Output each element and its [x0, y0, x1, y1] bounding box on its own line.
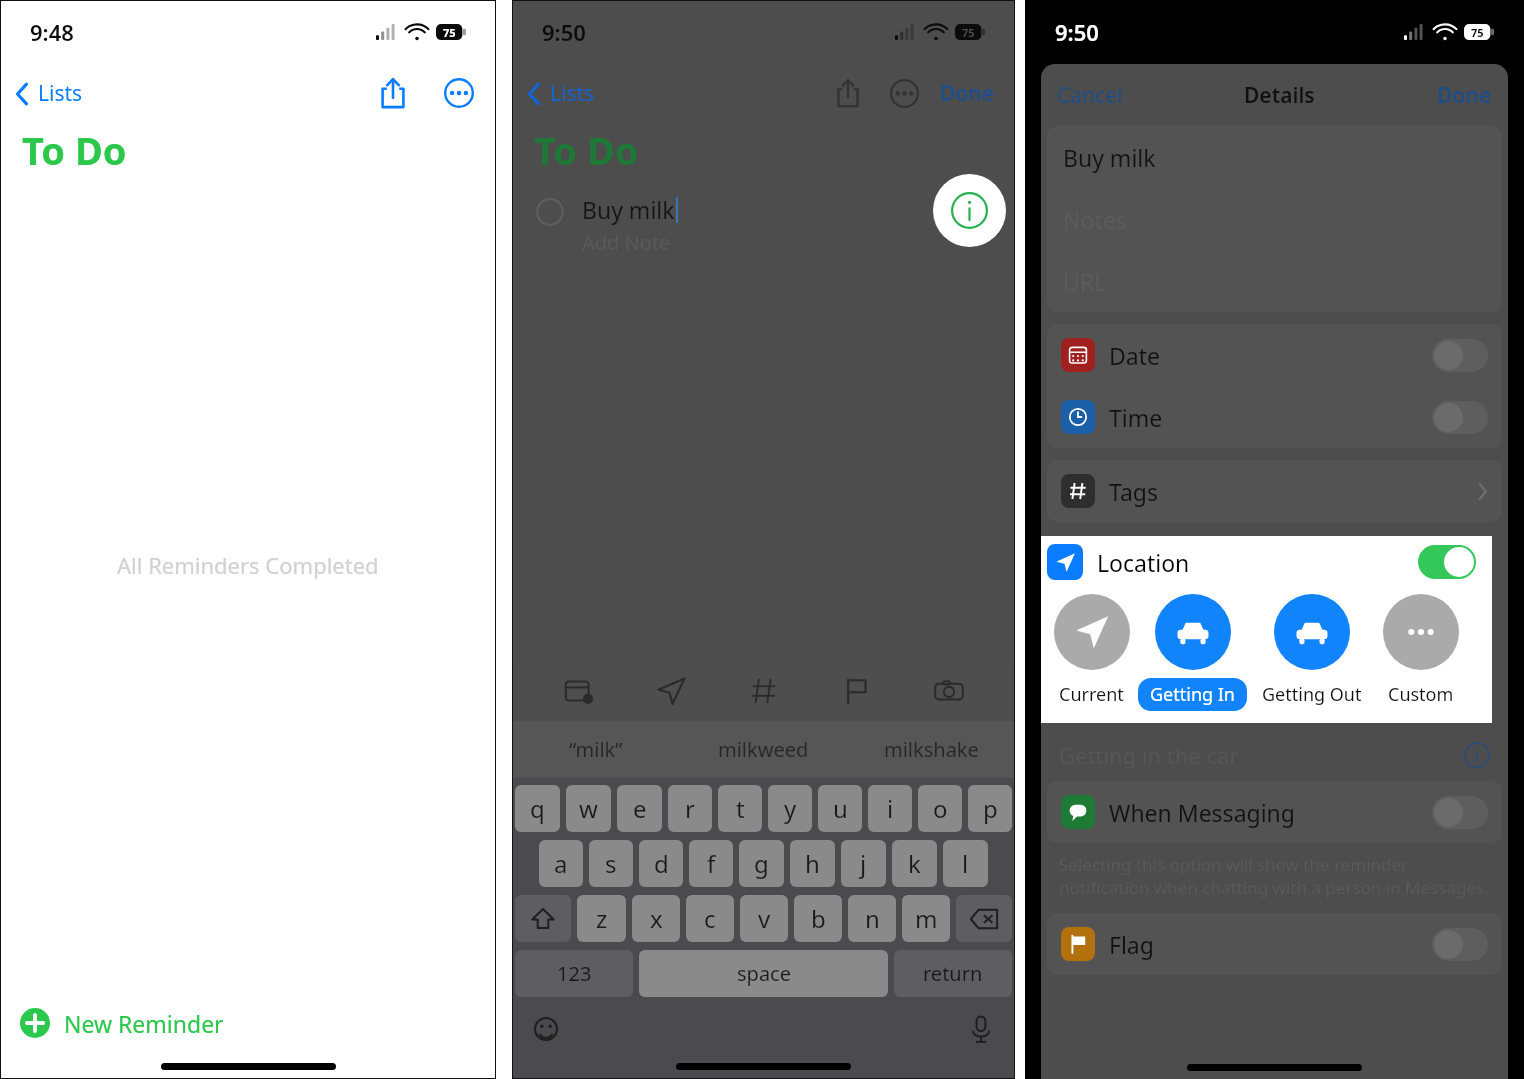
staticText: n — [865, 902, 880, 935]
staticText: space — [737, 960, 791, 987]
button[interactable]: o — [918, 785, 962, 832]
button[interactable]: return — [894, 950, 1012, 997]
button[interactable]: d — [639, 840, 683, 887]
button[interactable]: space — [639, 950, 888, 997]
button[interactable]: loc — [645, 665, 697, 717]
staticText: p — [983, 792, 998, 825]
button[interactable]: New Reminder — [0, 993, 496, 1053]
button[interactable]: v — [740, 895, 788, 942]
staticText: Add Note — [582, 229, 671, 256]
button[interactable]: More options — [436, 70, 482, 116]
button[interactable]: Tags — [1047, 460, 1502, 522]
button[interactable]: b — [794, 895, 842, 942]
button[interactable]: Getting in the car — [1041, 729, 1508, 781]
staticText: New Reminder — [64, 1008, 224, 1039]
button[interactable]: More options — [882, 71, 926, 115]
button[interactable]: a — [539, 840, 583, 887]
button[interactable]: Buy milk — [1047, 126, 1502, 188]
button[interactable]: Toggle off — [1432, 796, 1488, 829]
staticText: l — [962, 847, 969, 880]
button[interactable]: “milk” — [512, 721, 679, 778]
button[interactable]: t — [718, 785, 762, 832]
staticText: return — [923, 960, 983, 987]
staticText: Buy milk — [582, 194, 675, 225]
staticText: Lists — [38, 79, 83, 108]
staticText: s — [605, 847, 617, 880]
staticText: Getting Out — [1262, 682, 1362, 707]
button[interactable]: s — [589, 840, 633, 887]
button[interactable] — [515, 895, 571, 942]
button[interactable]: cal — [553, 665, 605, 717]
staticText: o — [933, 792, 948, 825]
button[interactable]: Done — [1429, 73, 1500, 118]
staticText: h — [805, 847, 820, 880]
button[interactable]: Done — [934, 73, 1001, 114]
button[interactable]: Flag — [1047, 913, 1502, 975]
button[interactable]: Toggle off — [1432, 339, 1488, 372]
staticText: Location — [1097, 547, 1190, 578]
button[interactable]: i — [868, 785, 912, 832]
button[interactable]: Info — [933, 174, 1006, 247]
button[interactable]: hash — [738, 665, 790, 717]
button[interactable]: Current — [1047, 594, 1136, 711]
staticText: d — [654, 847, 669, 880]
staticText: w — [579, 792, 598, 825]
staticText: “milk” — [569, 736, 623, 763]
button[interactable]: x — [632, 895, 680, 942]
button[interactable]: z — [577, 895, 626, 942]
button[interactable]: milkshake — [847, 721, 1015, 778]
staticText: 75 — [962, 25, 975, 40]
button[interactable]: Date — [1047, 324, 1502, 386]
button[interactable]: cam — [923, 665, 975, 717]
button[interactable]: g — [739, 840, 784, 887]
button[interactable]: y — [768, 785, 812, 832]
button[interactable]: h — [790, 840, 835, 887]
button[interactable]: Lists — [526, 79, 603, 108]
button[interactable]: flag — [830, 665, 882, 717]
button[interactable]: Lists — [14, 79, 91, 108]
button[interactable]: m — [902, 895, 950, 942]
button[interactable]: milkweed — [679, 721, 847, 778]
button[interactable]: Time — [1047, 386, 1502, 448]
staticText: y — [784, 792, 797, 825]
button[interactable]: r — [668, 785, 712, 832]
button[interactable]: Getting Out — [1250, 594, 1374, 711]
button[interactable]: e — [617, 785, 662, 832]
button[interactable]: Toggle off — [1432, 928, 1488, 961]
button[interactable]: k — [892, 840, 937, 887]
button[interactable]: l — [943, 840, 988, 887]
staticText: 9:50 — [542, 17, 586, 47]
staticText: milkshake — [884, 736, 979, 763]
button[interactable]: When Messaging — [1047, 781, 1502, 843]
button[interactable]: Getting In — [1138, 594, 1247, 711]
button[interactable]: j — [841, 840, 886, 887]
button[interactable]: Custom — [1376, 594, 1466, 711]
button[interactable]: Dictate — [961, 1009, 1001, 1049]
staticText: g — [754, 847, 769, 880]
staticText: c — [704, 902, 716, 935]
button[interactable]: Emoji — [526, 1009, 566, 1049]
button[interactable]: w — [566, 785, 611, 832]
staticText: Done — [1437, 81, 1492, 110]
button[interactable]: Share — [370, 70, 416, 116]
button[interactable]: Share — [826, 71, 870, 115]
button[interactable]: Cancel — [1049, 73, 1131, 118]
button[interactable]: f — [689, 840, 733, 887]
button[interactable]: c — [686, 895, 734, 942]
staticText: When Messaging — [1109, 797, 1295, 828]
button[interactable]: q — [515, 785, 560, 832]
button[interactable]: Toggle off — [1432, 401, 1488, 434]
staticText: Current — [1059, 682, 1124, 707]
button[interactable]: n — [848, 895, 896, 942]
staticText: 9:48 — [30, 17, 74, 47]
button[interactable]: p — [968, 785, 1012, 832]
button[interactable]: u — [818, 785, 862, 832]
staticText: Cancel — [1057, 81, 1123, 110]
button[interactable]: Location — [1047, 536, 1476, 588]
button[interactable]: 123 — [515, 950, 633, 997]
button[interactable]: Location on — [1418, 545, 1476, 579]
button[interactable] — [956, 895, 1012, 942]
